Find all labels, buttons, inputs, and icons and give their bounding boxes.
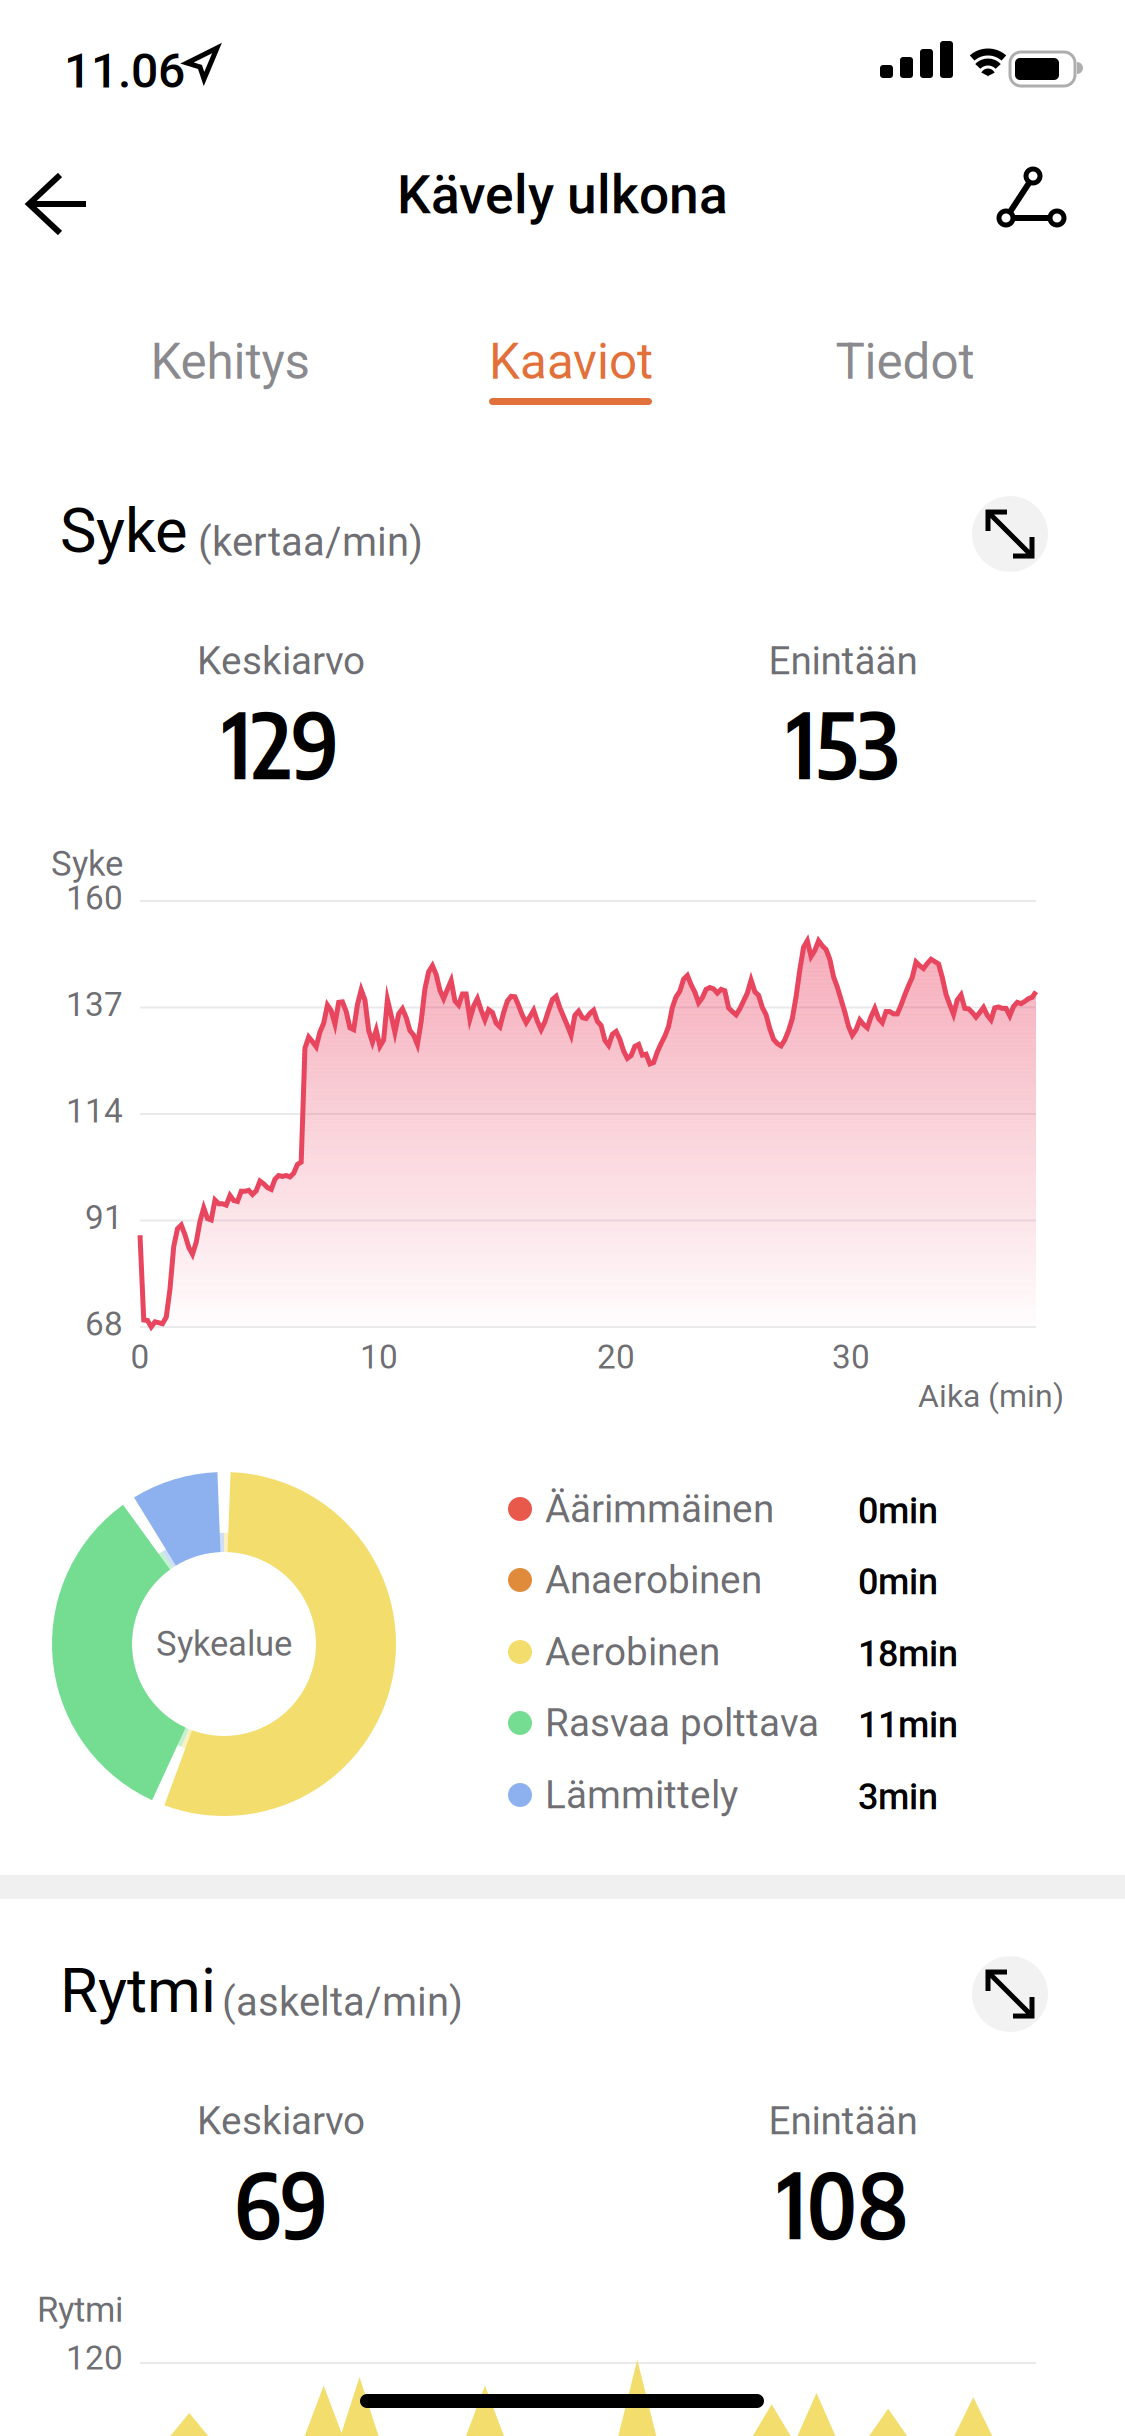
staticText: 30 xyxy=(832,1337,870,1377)
staticText: Lämmittely xyxy=(545,1772,738,1818)
staticText: 18min xyxy=(858,1633,958,1675)
staticText: Kaaviot xyxy=(489,333,653,391)
staticText: 68 xyxy=(85,1304,123,1344)
staticText: 160 xyxy=(66,878,123,918)
staticText: Äärimmäinen xyxy=(545,1486,774,1532)
staticText: Aika (min) xyxy=(918,1377,1064,1415)
staticText: Enintään xyxy=(768,638,917,684)
staticText: Rytmi xyxy=(60,1955,216,2027)
staticText: Rasvaa polttava xyxy=(545,1700,819,1746)
staticText: Kävely ulkona xyxy=(397,164,728,226)
staticText: 0min xyxy=(858,1490,938,1532)
button[interactable]: Back xyxy=(0,140,150,268)
staticText: (kertaa/min) xyxy=(198,519,423,565)
staticText: 10 xyxy=(360,1337,398,1377)
staticText: Anaerobinen xyxy=(545,1557,762,1603)
button[interactable]: Tiedot xyxy=(755,310,1055,428)
staticText: 0 xyxy=(130,1337,149,1377)
staticText: Syke xyxy=(51,844,123,884)
staticText: 120 xyxy=(66,2338,123,2378)
staticText: 3min xyxy=(858,1776,938,1818)
staticText: 137 xyxy=(66,985,123,1024)
staticText: (askelta/min) xyxy=(222,1979,463,2025)
staticText: 0min xyxy=(858,1561,938,1603)
staticText: 69 xyxy=(233,2147,328,2259)
staticText: Keskiarvo xyxy=(197,638,365,684)
staticText: Sykealue xyxy=(156,1624,292,1664)
button[interactable]: Share route xyxy=(980,140,1106,266)
staticText: Kehitys xyxy=(150,333,309,391)
staticText: 153 xyxy=(787,687,899,799)
staticText: Keskiarvo xyxy=(197,2098,365,2144)
staticText: 11.06 xyxy=(64,43,185,99)
staticText: 11min xyxy=(858,1704,958,1746)
staticText: 129 xyxy=(222,687,339,799)
staticText: Syke xyxy=(60,495,188,567)
staticText: 91 xyxy=(85,1198,123,1237)
button[interactable]: Kaaviot xyxy=(421,310,721,428)
staticText: Rytmi xyxy=(37,2290,123,2330)
button[interactable]: Kehitys xyxy=(80,310,380,428)
staticText: 108 xyxy=(777,2147,908,2259)
staticText: 114 xyxy=(66,1091,123,1131)
staticText: Enintään xyxy=(768,2098,917,2144)
staticText: 20 xyxy=(597,1337,635,1377)
button[interactable]: Expand chart xyxy=(972,1956,1048,2032)
staticText: Aerobinen xyxy=(545,1629,720,1675)
button[interactable]: Expand chart xyxy=(972,496,1048,572)
staticText: Tiedot xyxy=(835,333,974,391)
